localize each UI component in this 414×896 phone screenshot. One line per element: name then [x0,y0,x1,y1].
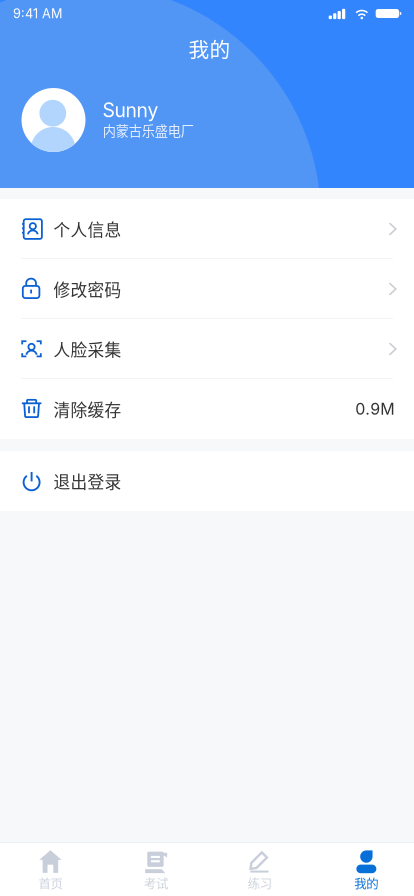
button[interactable]: 考试 [103,843,207,896]
button[interactable]: 练习 [207,843,310,896]
button[interactable]: 清除缓存 [0,379,414,439]
staticText: 考试 [144,874,168,892]
button[interactable]: 首页 [0,843,103,896]
button[interactable]: 人脸采集 [0,319,414,379]
staticText: 9:41 AM [13,6,62,21]
staticText: Sunny [102,99,158,122]
staticText: 我的 [354,874,378,892]
staticText: 清除缓存 [53,397,121,421]
button[interactable]: 个人信息 [0,199,414,259]
staticText: 内蒙古乐盛电厂 [103,121,194,140]
staticText: 人脸采集 [53,337,121,361]
staticText: 练习 [248,874,272,892]
button[interactable]: 修改密码 [0,259,414,319]
staticText: 我的 [188,34,230,63]
button[interactable]: 退出登录 [0,451,414,511]
staticText: 个人信息 [53,217,121,241]
staticText: 修改密码 [53,277,121,301]
staticText: 首页 [38,874,62,892]
staticText: 退出登录 [53,469,121,493]
button[interactable]: 我的 [310,843,414,896]
staticText: 0.9M [355,399,394,419]
